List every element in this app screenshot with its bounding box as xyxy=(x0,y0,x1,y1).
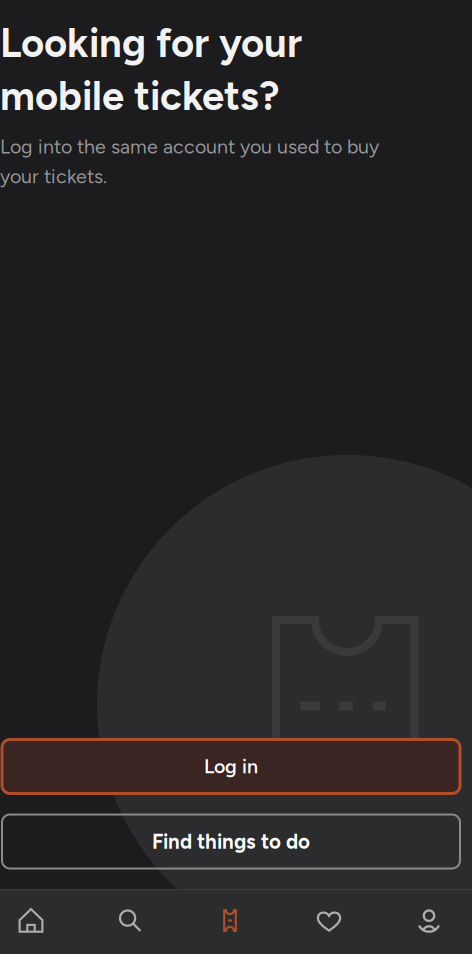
button[interactable]: Log in xyxy=(2,739,460,793)
staticText: Find things to do xyxy=(152,829,310,854)
staticText: mobile tickets? xyxy=(0,72,280,120)
staticText: Log into the same account you used to bu… xyxy=(0,135,379,158)
button[interactable]: Search xyxy=(88,889,172,952)
staticText: Looking for your xyxy=(0,19,302,67)
staticText: Log in xyxy=(204,755,258,778)
button[interactable]: Home xyxy=(0,889,73,952)
button[interactable]: Find things to do xyxy=(2,814,460,868)
staticText: your tickets. xyxy=(0,164,107,188)
button[interactable]: Account xyxy=(387,889,471,952)
button[interactable]: Favorites xyxy=(287,889,371,952)
button[interactable]: My Tickets xyxy=(188,889,272,952)
